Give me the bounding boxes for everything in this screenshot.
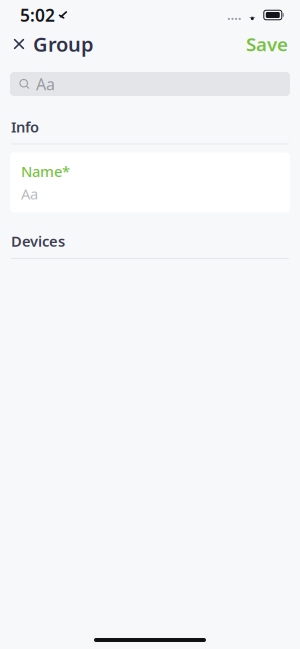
- staticText: Save: [246, 32, 288, 56]
- staticText: Info: [11, 117, 39, 136]
- staticText: Devices: [11, 231, 65, 251]
- staticText: Name*: [21, 161, 70, 181]
- staticText: Group: [33, 31, 94, 57]
- staticText: 5:02: [20, 3, 55, 26]
- button[interactable]: Save: [236, 26, 298, 62]
- button[interactable]: Aa: [10, 72, 290, 96]
- button[interactable]: Close Group: [2, 25, 104, 63]
- staticText: Aa: [36, 73, 55, 95]
- staticText: Aa: [21, 184, 38, 203]
